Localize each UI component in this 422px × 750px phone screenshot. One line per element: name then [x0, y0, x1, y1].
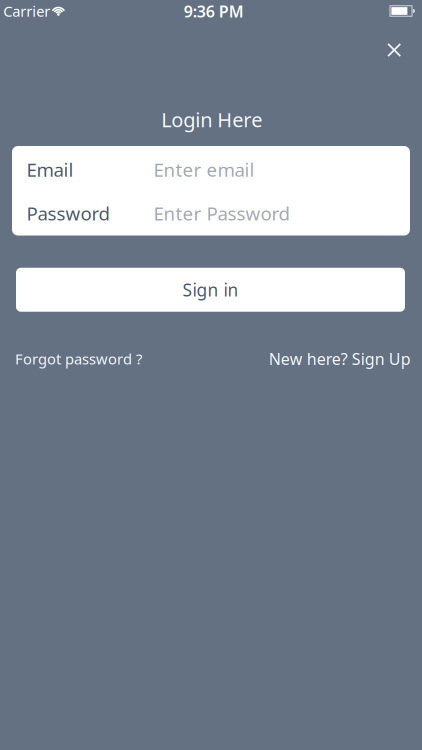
staticText: Email [26, 157, 73, 182]
staticText: Carrier [3, 1, 50, 21]
staticText: Enter email [153, 157, 254, 182]
staticText: Login Here [161, 106, 262, 133]
staticText: Sign in [182, 278, 238, 301]
button[interactable]: New here? Sign Up [269, 348, 411, 369]
button[interactable]: Sign in [16, 268, 405, 312]
button[interactable]: Forgot password ? [15, 349, 142, 369]
button[interactable]: Password [12, 191, 409, 236]
staticText: 9:36 PM [184, 1, 244, 22]
button[interactable]: Email [12, 147, 409, 192]
staticText: New here? Sign Up [269, 348, 411, 369]
staticText: Password [26, 201, 109, 226]
staticText: Forgot password ? [15, 349, 142, 369]
staticText: Enter Password [153, 201, 289, 226]
button[interactable]: Close [384, 40, 404, 60]
